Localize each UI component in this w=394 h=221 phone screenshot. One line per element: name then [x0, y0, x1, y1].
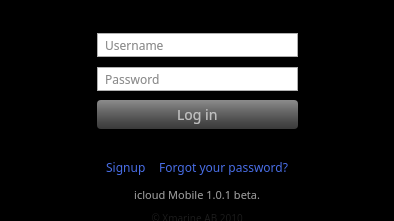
button[interactable]: Password	[98, 68, 297, 90]
staticText: © Xmarine AB 2010	[151, 211, 243, 221]
staticText: Signup	[106, 159, 146, 175]
staticText: Forgot your password?	[159, 159, 288, 175]
staticText: Username	[105, 37, 164, 53]
button[interactable]: Signup	[104, 157, 148, 177]
button[interactable]: Log in	[97, 100, 298, 129]
button[interactable]: Forgot your password?	[157, 157, 290, 177]
staticText: Log in	[177, 105, 218, 124]
staticText: icloud Mobile 1.0.1 beta.	[134, 187, 260, 202]
staticText: Password	[105, 71, 160, 87]
button[interactable]: Username	[98, 34, 297, 56]
